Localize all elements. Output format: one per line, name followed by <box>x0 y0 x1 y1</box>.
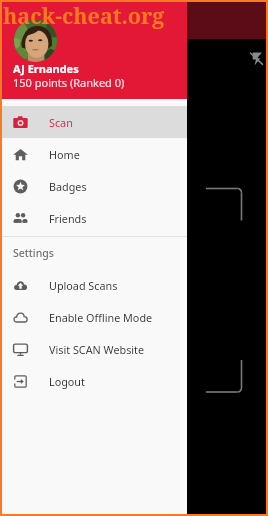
button[interactable]: Enable Offline Mode <box>2 301 187 333</box>
button[interactable]: Visit SCAN Website <box>2 333 187 365</box>
staticText: Logout <box>49 374 85 389</box>
staticText: Upload Scans <box>49 278 118 293</box>
button[interactable]: Flash off <box>247 48 266 67</box>
button[interactable]: Badges <box>2 170 187 202</box>
staticText: Friends <box>49 211 87 226</box>
button[interactable]: Profile photo <box>14 19 57 62</box>
button[interactable]: Scan <box>2 106 187 138</box>
button[interactable]: Logout <box>2 365 187 397</box>
staticText: Visit SCAN Website <box>49 342 145 357</box>
staticText: AJ Ernandes <box>13 61 79 76</box>
staticText: Home <box>49 147 80 162</box>
staticText: Badges <box>49 179 87 194</box>
staticText: Enable Offline Mode <box>49 310 153 325</box>
staticText: Settings <box>13 246 54 260</box>
button[interactable]: Home <box>2 138 187 170</box>
staticText: hack-cheat.org <box>3 1 165 30</box>
button[interactable]: Friends <box>2 202 187 234</box>
staticText: Scan <box>49 115 73 130</box>
staticText: 150 points (Ranked 0) <box>13 75 125 90</box>
button[interactable]: Upload Scans <box>2 269 187 301</box>
